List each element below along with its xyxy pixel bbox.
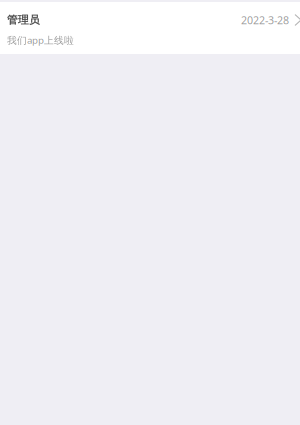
staticText: 2022-3-28	[241, 13, 289, 27]
button[interactable]: 管理员	[0, 2, 300, 54]
staticText: 管理员	[7, 13, 40, 27]
staticText: 我们app上线啦	[7, 33, 74, 47]
